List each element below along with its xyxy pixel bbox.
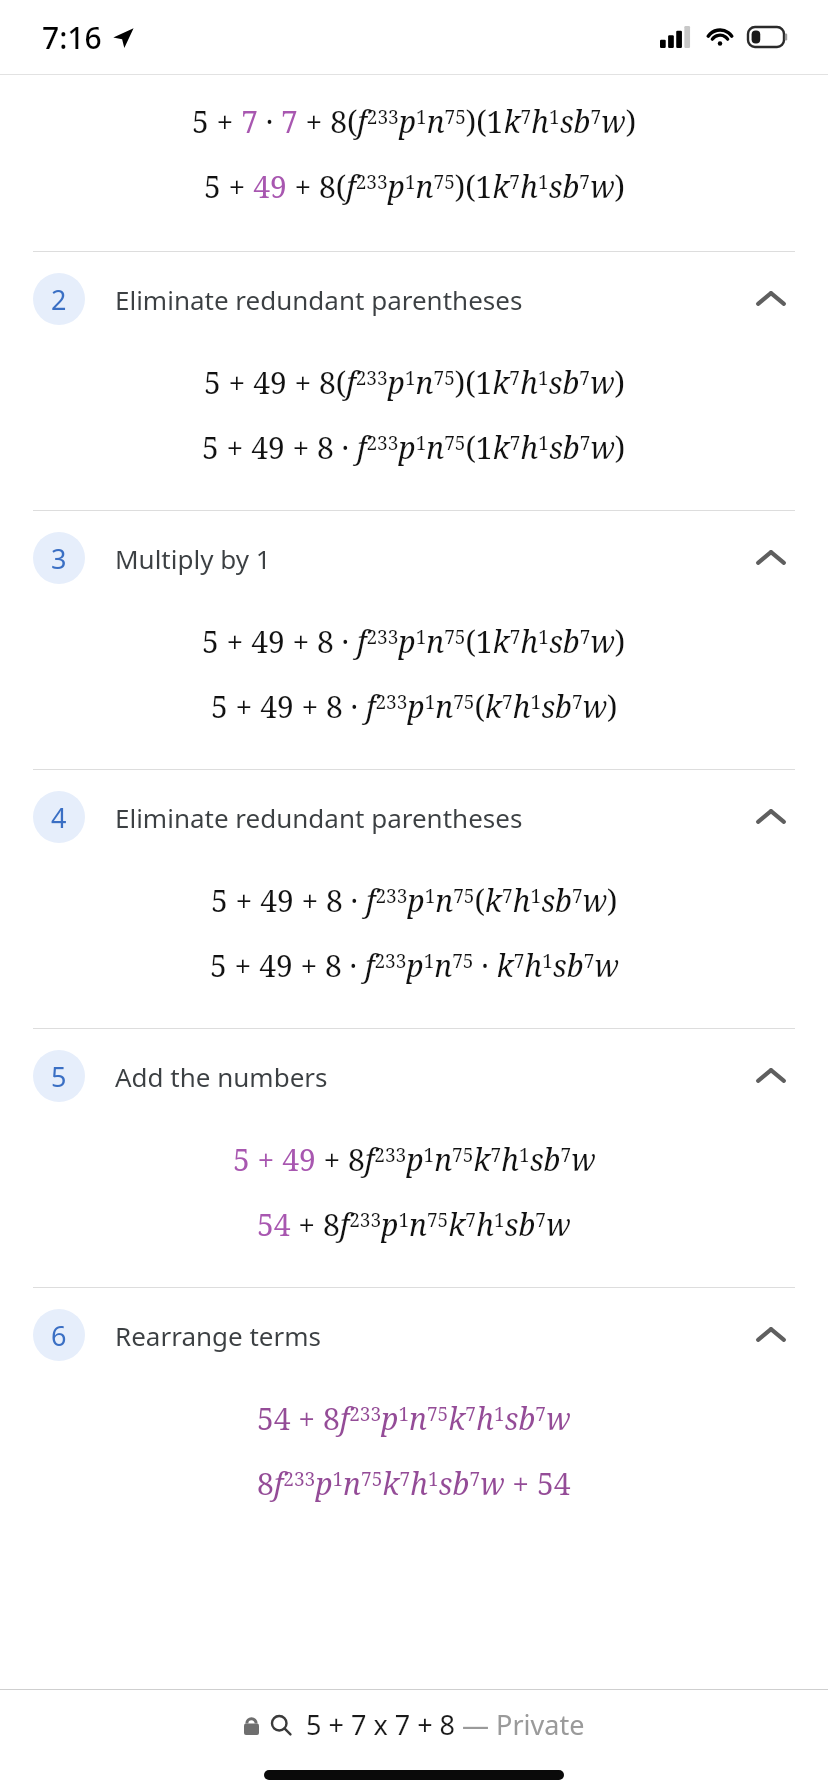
other: Collapse step	[747, 275, 795, 323]
staticText: 5 + 7 x 7 + 8 — Private	[306, 1706, 585, 1743]
staticText: 5	[51, 1058, 67, 1095]
button[interactable]: 5 + 7 x 7 + 8 — Private	[244, 1706, 585, 1743]
staticText: 8f233p1n75k7h1sb7w + 54	[257, 1463, 571, 1504]
button[interactable]: 3	[0, 521, 828, 595]
button[interactable]: 4	[0, 780, 828, 854]
staticText: 5 + 7 · 7 + 8(f233p1n75)(1k7h1sb7w)	[192, 101, 637, 142]
staticText: 5 + 49 + 8f233p1n75k7h1sb7w	[233, 1139, 596, 1180]
staticText: 54 + 8f233p1n75k7h1sb7w	[257, 1398, 571, 1439]
staticText: Eliminate redundant parentheses	[115, 282, 523, 317]
other: Collapse step	[747, 534, 795, 582]
staticText: 7:16	[42, 17, 102, 58]
staticText: 2	[51, 281, 67, 318]
staticText: 5 + 49 + 8 · f233p1n75(k7h1sb7w)	[211, 880, 618, 921]
staticText: 4	[51, 799, 67, 836]
staticText: Multiply by 1	[115, 541, 271, 576]
button[interactable]: 5	[0, 1039, 828, 1113]
staticText: 5 + 49 + 8(f233p1n75)(1k7h1sb7w)	[204, 166, 625, 207]
staticText: 5 + 49 + 8 · f233p1n75(k7h1sb7w)	[211, 686, 618, 727]
staticText: Eliminate redundant parentheses	[115, 800, 523, 835]
staticText: 3	[51, 540, 67, 577]
staticText: Rearrange terms	[115, 1318, 321, 1353]
other: Collapse step	[747, 1052, 795, 1100]
button[interactable]: 2	[0, 262, 828, 336]
staticText: 5 + 49 + 8(f233p1n75)(1k7h1sb7w)	[204, 362, 625, 403]
button[interactable]: 6	[0, 1298, 828, 1372]
staticText: 54 + 8f233p1n75k7h1sb7w	[257, 1204, 571, 1245]
other: Collapse step	[747, 793, 795, 841]
staticText: 5 + 49 + 8 · f233p1n75(1k7h1sb7w)	[202, 621, 626, 662]
staticText: 5 + 49 + 8 · f233p1n75 · k7h1sb7w	[210, 945, 619, 986]
other: Collapse step	[747, 1311, 795, 1359]
staticText: 6	[51, 1317, 67, 1354]
staticText: 5 + 49 + 8 · f233p1n75(1k7h1sb7w)	[202, 427, 626, 468]
staticText: Add the numbers	[115, 1059, 328, 1094]
